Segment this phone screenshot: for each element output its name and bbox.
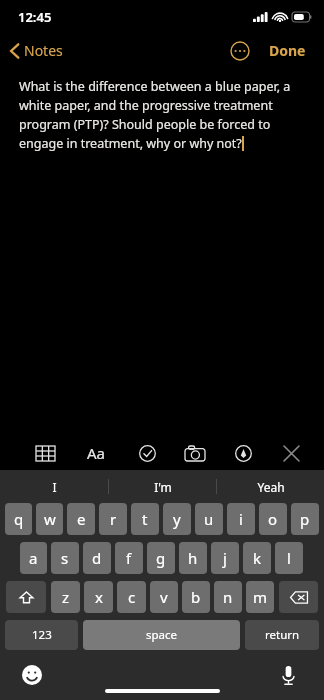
button[interactable]: space <box>83 620 240 650</box>
staticText: a <box>29 548 38 568</box>
button[interactable]: Table <box>30 438 60 468</box>
staticText: program (PTP)? Should people be forced t… <box>19 116 271 133</box>
staticText: w <box>44 509 56 529</box>
button[interactable]: More options <box>227 38 253 64</box>
button[interactable]: p <box>291 503 319 535</box>
button[interactable]: h <box>179 542 207 574</box>
staticText: l <box>287 548 291 568</box>
button[interactable]: q <box>5 503 32 535</box>
button[interactable]: Emoji <box>18 661 46 689</box>
staticText: o <box>268 509 278 529</box>
button[interactable]: Dictation <box>274 661 302 689</box>
button[interactable]: c <box>117 581 146 613</box>
button[interactable]: m <box>246 581 274 613</box>
staticText: Aa <box>87 443 106 463</box>
staticText: f <box>126 548 132 568</box>
staticText: n <box>223 587 233 607</box>
button[interactable]: Aa <box>79 439 114 467</box>
staticText: k <box>253 548 262 568</box>
staticText: u <box>204 509 214 529</box>
button[interactable]: v <box>150 581 178 613</box>
button[interactable]: r <box>99 503 127 535</box>
staticText: What is the difference between a blue pa… <box>19 78 291 95</box>
button[interactable]: I'm <box>109 470 216 503</box>
staticText: z <box>62 587 70 607</box>
staticText: I <box>52 479 57 495</box>
staticText: m <box>253 587 268 607</box>
button[interactable]: i <box>227 503 255 535</box>
button[interactable]: g <box>147 542 175 574</box>
staticText: c <box>128 587 136 607</box>
button[interactable]: u <box>195 503 223 535</box>
staticText: white paper, and the progressive treatme… <box>19 97 273 114</box>
button[interactable]: y <box>163 503 191 535</box>
button[interactable]: 123 <box>5 620 78 650</box>
staticText: Done <box>269 41 306 60</box>
button[interactable]: Camera <box>180 438 210 468</box>
button[interactable]: Yeah <box>217 470 324 503</box>
staticText: r <box>110 509 117 529</box>
button[interactable]: a <box>20 542 47 574</box>
staticText: 12:45 <box>18 8 52 26</box>
button[interactable]: o <box>259 503 287 535</box>
staticText: p <box>300 509 310 529</box>
button[interactable]: l <box>275 542 303 574</box>
button[interactable]: k <box>243 542 271 574</box>
staticText: engage in treatment, why or why not? <box>19 135 242 152</box>
staticText: h <box>188 548 198 568</box>
button[interactable]: d <box>83 542 111 574</box>
button[interactable]: w <box>36 503 63 535</box>
button[interactable]: s <box>51 542 79 574</box>
staticText: t <box>142 509 148 529</box>
button[interactable]: e <box>67 503 95 535</box>
staticText: return <box>265 627 300 643</box>
button[interactable]: Close keyboard <box>276 438 306 468</box>
button[interactable]: I <box>0 470 108 503</box>
button[interactable]: z <box>51 581 80 613</box>
button[interactable]: Backspace <box>279 581 318 613</box>
button[interactable]: x <box>84 581 113 613</box>
button[interactable]: n <box>214 581 242 613</box>
staticText: d <box>92 548 102 568</box>
button[interactable]: b <box>182 581 210 613</box>
staticText: x <box>95 587 103 607</box>
staticText: 123 <box>32 627 52 643</box>
staticText: q <box>14 509 24 529</box>
staticText: I'm <box>154 479 172 495</box>
staticText: g <box>156 548 166 568</box>
staticText: j <box>223 548 227 568</box>
staticText: i <box>239 509 243 529</box>
button[interactable]: Done <box>263 37 312 64</box>
button[interactable]: Notes <box>0 37 73 64</box>
button[interactable]: Markup <box>228 438 258 468</box>
staticText: Notes <box>24 41 63 60</box>
button[interactable]: t <box>131 503 159 535</box>
staticText: s <box>61 548 69 568</box>
button[interactable]: f <box>115 542 143 574</box>
button[interactable]: Checklist <box>132 438 162 468</box>
staticText: y <box>173 509 181 529</box>
button[interactable]: j <box>211 542 239 574</box>
staticText: v <box>160 587 168 607</box>
staticText: Yeah <box>257 479 285 495</box>
staticText: e <box>77 509 86 529</box>
staticText: b <box>191 587 201 607</box>
staticText: space <box>146 627 178 643</box>
button[interactable]: Shift <box>6 581 46 613</box>
button[interactable]: return <box>245 620 319 650</box>
